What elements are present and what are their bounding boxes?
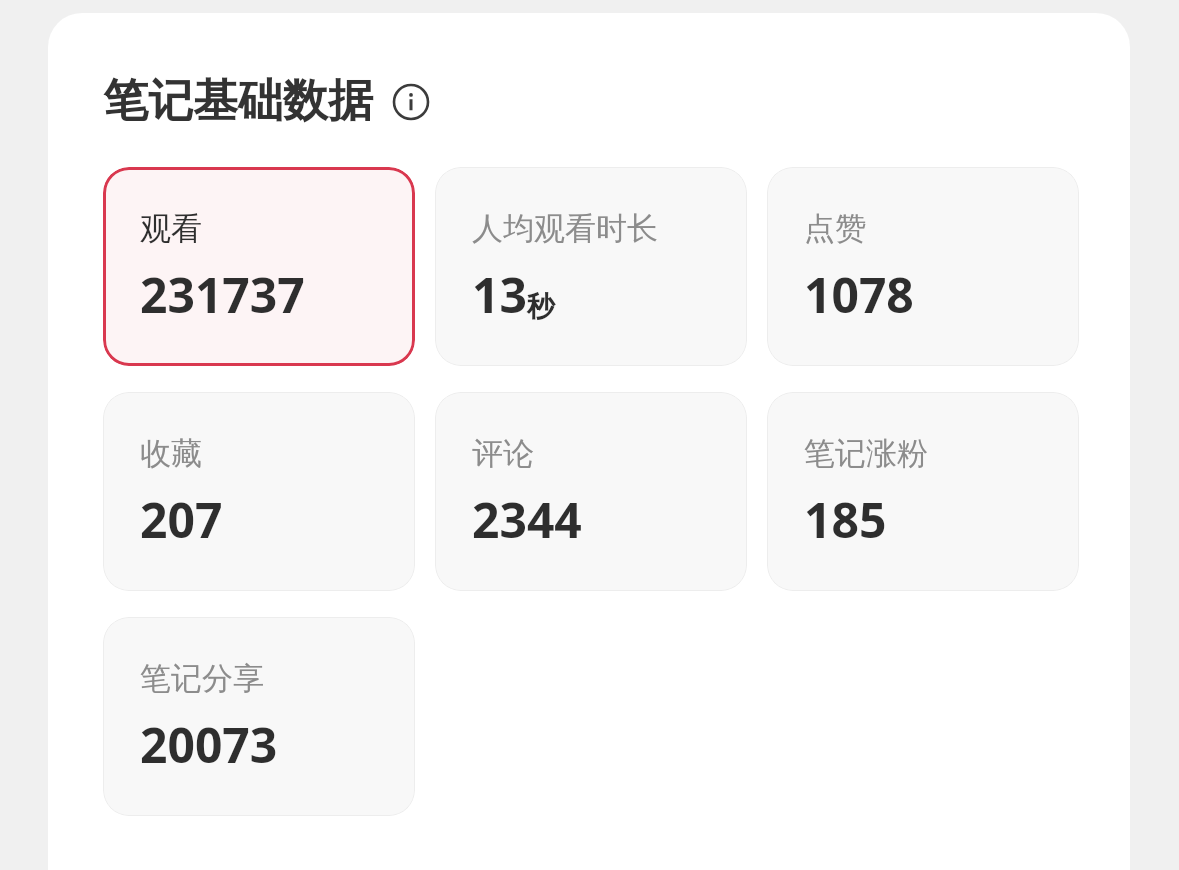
staticText: 笔记涨粉 (804, 434, 928, 473)
staticText: 185 (804, 487, 887, 552)
staticText: 2344 (472, 487, 582, 552)
staticText: 笔记分享 (140, 659, 264, 698)
button[interactable]: 笔记涨粉 (767, 392, 1079, 591)
staticText: 收藏 (140, 434, 202, 473)
staticText: 20073 (140, 712, 278, 777)
button[interactable]: 说明 (391, 82, 431, 122)
button[interactable]: 笔记分享 (103, 617, 415, 816)
button[interactable]: 观看 (103, 167, 415, 366)
staticText: 评论 (472, 434, 534, 473)
button[interactable]: 人均观看时长 (435, 167, 747, 366)
button[interactable]: 评论 (435, 392, 747, 591)
staticText: 231737 (140, 262, 305, 327)
staticText: 1078 (804, 262, 914, 327)
button[interactable]: 收藏 (103, 392, 415, 591)
staticText: 207 (140, 487, 223, 552)
staticText: 秒 (527, 289, 555, 324)
staticText: 点赞 (804, 209, 866, 248)
staticText: 观看 (140, 209, 202, 248)
button[interactable]: 点赞 (767, 167, 1079, 366)
staticText: 人均观看时长 (472, 209, 658, 248)
staticText: 13 (472, 262, 527, 327)
staticText: 笔记基础数据 (103, 73, 373, 130)
